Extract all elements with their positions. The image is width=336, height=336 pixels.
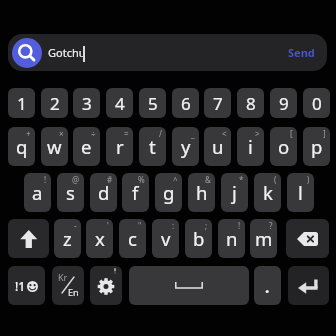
- staticText: 1: [17, 92, 27, 115]
- button[interactable]: [8, 219, 49, 258]
- button[interactable]: i: [237, 127, 264, 166]
- staticText: m: [255, 226, 273, 251]
- staticText: Kr: [58, 271, 68, 283]
- staticText: s: [66, 180, 75, 205]
- button[interactable]: Kr: [52, 266, 84, 305]
- button[interactable]: 4: [106, 88, 133, 118]
- staticText: ^: [173, 174, 178, 185]
- staticText: a: [32, 180, 43, 205]
- staticText: g: [163, 180, 175, 205]
- button[interactable]: c: [119, 219, 146, 258]
- staticText: z: [63, 226, 72, 251]
- button[interactable]: [129, 266, 249, 305]
- staticText: ): [307, 174, 310, 185]
- staticText: v: [161, 226, 171, 251]
- staticText: <: [222, 128, 227, 139]
- button[interactable]: q: [8, 127, 35, 166]
- button[interactable]: x: [86, 219, 113, 258]
- button[interactable]: l: [287, 173, 314, 212]
- staticText: c: [128, 226, 137, 251]
- staticText: 7: [213, 92, 223, 115]
- button[interactable]: 0: [303, 88, 330, 118]
- button[interactable]: w: [41, 127, 68, 166]
- button[interactable]: 5: [139, 88, 166, 118]
- staticText: u: [212, 134, 224, 159]
- staticText: 3: [82, 92, 92, 115]
- staticText: t: [149, 134, 156, 159]
- button[interactable]: v: [152, 219, 179, 258]
- staticText: *: [239, 174, 244, 185]
- staticText: f: [132, 180, 139, 205]
- button[interactable]: n: [218, 219, 245, 258]
- staticText: o: [278, 134, 290, 159]
- button[interactable]: j: [221, 173, 248, 212]
- button[interactable]: [288, 266, 329, 305]
- button[interactable]: b: [185, 219, 212, 258]
- staticText: h: [196, 180, 208, 205]
- staticText: %: [138, 174, 145, 185]
- staticText: ÷: [91, 128, 96, 139]
- button[interactable]: a: [24, 173, 51, 212]
- staticText: e: [81, 134, 92, 159]
- button[interactable]: 3: [73, 88, 100, 118]
- button[interactable]: y: [172, 127, 199, 166]
- staticText: b: [193, 226, 205, 251]
- staticText: ': [107, 220, 109, 231]
- button[interactable]: 8: [237, 88, 264, 118]
- staticText: !: [238, 220, 241, 231]
- button[interactable]: 1: [8, 88, 35, 118]
- staticText: ?: [269, 220, 273, 231]
- staticText: 8: [246, 92, 256, 115]
- button[interactable]: 6: [172, 88, 199, 118]
- staticText: &: [205, 174, 211, 185]
- button[interactable]: m: [250, 219, 277, 258]
- button[interactable]: [90, 266, 122, 305]
- button[interactable]: s: [57, 173, 84, 212]
- button[interactable]: r: [106, 127, 133, 166]
- button[interactable]: e: [73, 127, 100, 166]
- staticText: i: [248, 134, 253, 159]
- button[interactable]: f: [122, 173, 149, 212]
- staticText: d: [98, 180, 110, 205]
- staticText: 6: [181, 92, 191, 115]
- button[interactable]: [254, 266, 281, 305]
- staticText: #: [107, 174, 113, 185]
- button[interactable]: k: [254, 173, 281, 212]
- staticText: 5: [148, 92, 158, 115]
- staticText: q: [16, 134, 28, 159]
- button[interactable]: u: [204, 127, 231, 166]
- staticText: En: [68, 286, 79, 298]
- staticText: =: [124, 128, 129, 139]
- staticText: p: [311, 134, 323, 159]
- staticText: k: [263, 180, 273, 205]
- staticText: !1: [15, 278, 26, 294]
- button[interactable]: 9: [270, 88, 297, 118]
- button[interactable]: Gotchu: [8, 34, 327, 71]
- staticText: /: [159, 128, 162, 139]
- button[interactable]: t: [139, 127, 166, 166]
- staticText: @: [72, 174, 80, 185]
- staticText: ×: [59, 128, 64, 139]
- staticText: r: [116, 134, 124, 159]
- button[interactable]: o: [270, 127, 297, 166]
- staticText: -: [74, 220, 77, 231]
- button[interactable]: 2: [41, 88, 68, 118]
- button[interactable]: h: [188, 173, 215, 212]
- button[interactable]: d: [90, 173, 117, 212]
- staticText: Gotchu: [48, 45, 86, 60]
- staticText: 0: [312, 92, 322, 115]
- button[interactable]: [286, 219, 329, 258]
- button[interactable]: Send: [288, 45, 315, 60]
- button[interactable]: !1: [8, 266, 45, 305]
- staticText: 9: [279, 92, 289, 115]
- button[interactable]: p: [303, 127, 330, 166]
- staticText: ]: [323, 128, 326, 139]
- staticText: !: [44, 174, 47, 185]
- button[interactable]: g: [155, 173, 182, 212]
- button[interactable]: 7: [204, 88, 231, 118]
- staticText: [: [290, 128, 293, 139]
- staticText: j: [232, 180, 237, 205]
- staticText: n: [226, 226, 238, 251]
- staticText: 4: [115, 92, 125, 115]
- button[interactable]: z: [54, 219, 81, 258]
